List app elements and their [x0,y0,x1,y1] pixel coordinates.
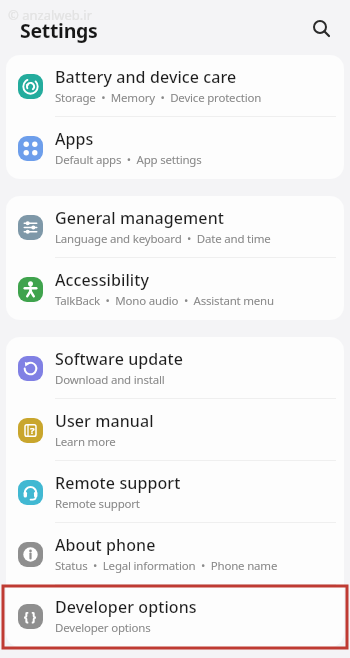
staticText: TalkBack • Mono audio • Assistant menu [55,293,274,309]
button[interactable]: Software update [6,337,344,399]
staticText: Developer options [55,620,151,636]
staticText: Language and keyboard • Date and time [55,231,271,247]
button[interactable]: Accessibility [6,258,344,320]
staticText: Status • Legal information • Phone name [55,558,278,574]
staticText: About phone [55,534,156,556]
staticText: Storage • Memory • Device protection [55,90,262,106]
staticText: Remote support [55,496,140,512]
staticText: ? [30,424,35,437]
staticText: Battery and device care [55,66,237,88]
staticText: Accessibility [55,269,150,291]
button[interactable]: Remote support [6,461,344,523]
staticText: General management [55,207,225,229]
staticText: © anzalweb.ir [8,6,93,24]
staticText: Remote support [55,472,181,494]
staticText: User manual [55,410,154,432]
button[interactable]: Apps [6,117,344,179]
button[interactable]: ? [6,399,344,461]
button[interactable] [300,7,342,49]
staticText: Settings [20,17,98,44]
staticText: Software update [55,348,184,370]
button[interactable]: About phone [6,523,344,585]
staticText: Developer options [55,596,197,618]
staticText: { } [24,609,37,625]
staticText: Download and install [55,372,165,388]
button[interactable]: General management [6,196,344,258]
button[interactable]: Battery and device care [6,55,344,117]
staticText: Default apps • App settings [55,152,202,168]
button[interactable]: { } [6,585,344,647]
staticText: Learn more [55,434,116,450]
staticText: Apps [55,128,94,150]
